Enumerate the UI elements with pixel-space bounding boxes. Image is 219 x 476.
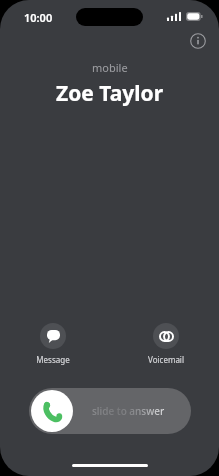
staticText: mobile bbox=[92, 60, 128, 75]
staticText: Message bbox=[36, 354, 70, 365]
staticText: 10:00 bbox=[24, 10, 53, 25]
button[interactable]: Slide to answer bbox=[29, 388, 191, 434]
button[interactable]: Voicemail bbox=[135, 323, 197, 365]
button[interactable]: Answer call bbox=[31, 390, 73, 432]
staticText: Zoe Taylor bbox=[56, 79, 164, 108]
staticText: slide to answer bbox=[92, 404, 165, 418]
button[interactable]: Message bbox=[22, 323, 84, 365]
staticText: Voicemail bbox=[148, 354, 184, 365]
button[interactable]: Call info bbox=[187, 30, 209, 52]
